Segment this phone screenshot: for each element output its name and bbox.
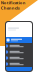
staticText: Notification Channels (1, 0, 26, 11)
